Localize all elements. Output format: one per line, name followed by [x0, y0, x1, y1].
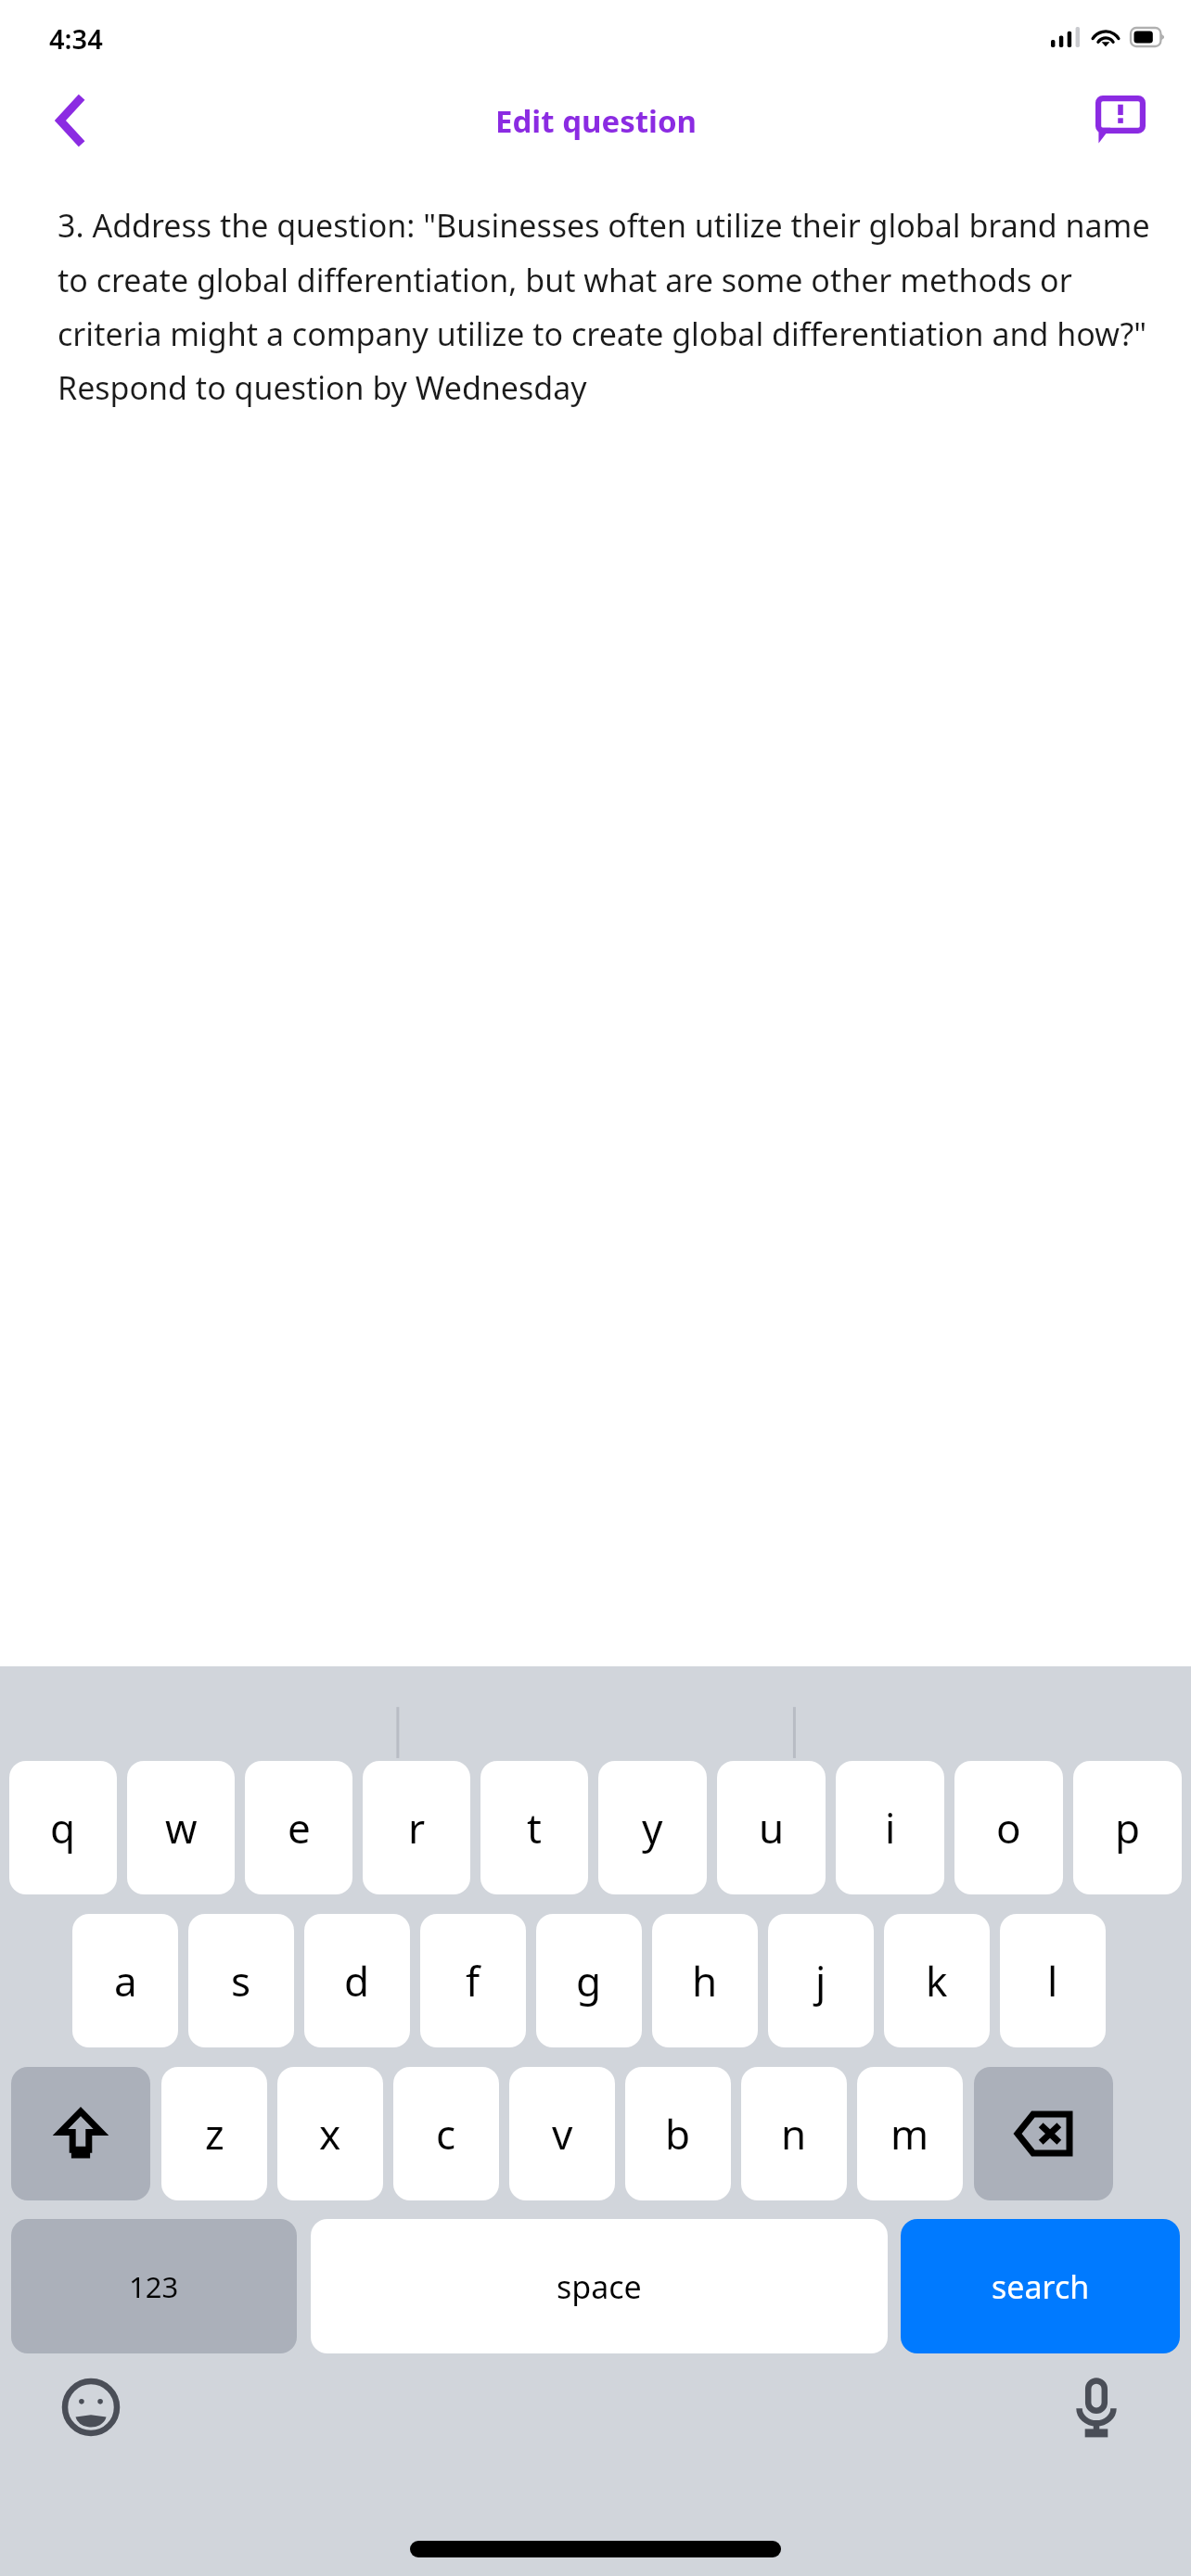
staticText: o [996, 1800, 1021, 1855]
button[interactable]: n [741, 2067, 847, 2200]
button[interactable]: m [857, 2067, 963, 2200]
button[interactable]: c [393, 2067, 499, 2200]
button[interactable]: z [161, 2067, 267, 2200]
button[interactable]: k [884, 1914, 990, 2047]
staticText: k [926, 1953, 948, 2009]
button[interactable]: 123 [11, 2219, 297, 2353]
staticText: space [557, 2265, 642, 2308]
button[interactable]: Back [37, 88, 102, 153]
staticText: a [114, 1953, 137, 2009]
button[interactable]: l [1000, 1914, 1106, 2047]
staticText: m [890, 2106, 929, 2162]
staticText: t [527, 1800, 542, 1855]
button[interactable]: Shift [11, 2067, 150, 2200]
staticText: 123 [129, 2267, 179, 2306]
button[interactable]: a [72, 1914, 178, 2047]
button[interactable]: f [420, 1914, 526, 2047]
button[interactable]: space [311, 2219, 888, 2353]
staticText: u [759, 1800, 785, 1855]
button[interactable]: p [1073, 1761, 1182, 1894]
button[interactable]: d [304, 1914, 410, 2047]
button[interactable]: o [954, 1761, 1063, 1894]
button[interactable]: h [652, 1914, 758, 2047]
staticText: b [665, 2106, 691, 2162]
button[interactable]: u [717, 1761, 826, 1894]
button[interactable]: search [901, 2219, 1180, 2353]
button[interactable]: g [536, 1914, 642, 2047]
staticText: d [344, 1953, 370, 2009]
button[interactable]: y [598, 1761, 707, 1894]
staticText: f [466, 1953, 480, 2009]
staticText: search [992, 2265, 1090, 2308]
button[interactable]: Dictation [1059, 2370, 1133, 2444]
staticText: 4:34 [49, 20, 103, 57]
staticText: 3. Address the question: "Businesses oft… [58, 204, 1163, 408]
staticText: s [231, 1953, 251, 2009]
staticText: r [408, 1800, 426, 1855]
button[interactable]: e [245, 1761, 352, 1894]
button[interactable]: Emoji [54, 2370, 128, 2444]
staticText: n [781, 2106, 807, 2162]
staticText: z [205, 2106, 224, 2162]
staticText: h [692, 1953, 718, 2009]
button[interactable]: b [625, 2067, 731, 2200]
staticText: v [552, 2106, 573, 2162]
staticText: q [50, 1800, 76, 1855]
staticText: j [815, 1953, 826, 2009]
staticText: c [436, 2106, 456, 2162]
staticText: x [319, 2106, 341, 2162]
staticText: e [288, 1800, 311, 1855]
button[interactable]: j [768, 1914, 874, 2047]
button[interactable]: q [9, 1761, 117, 1894]
staticText: Edit question [495, 100, 697, 142]
staticText: w [165, 1800, 198, 1855]
button[interactable]: w [127, 1761, 235, 1894]
button[interactable]: Backspace [974, 2067, 1113, 2200]
button[interactable]: r [363, 1761, 470, 1894]
staticText: g [576, 1953, 602, 2009]
staticText: y [642, 1800, 663, 1855]
button[interactable]: x [277, 2067, 383, 2200]
button[interactable]: s [188, 1914, 294, 2047]
staticText: i [885, 1800, 896, 1855]
staticText: l [1047, 1953, 1058, 2009]
button[interactable]: t [480, 1761, 588, 1894]
button[interactable]: v [509, 2067, 615, 2200]
button[interactable]: i [836, 1761, 944, 1894]
staticText: p [1115, 1800, 1141, 1855]
button[interactable]: Report question [1085, 85, 1156, 156]
